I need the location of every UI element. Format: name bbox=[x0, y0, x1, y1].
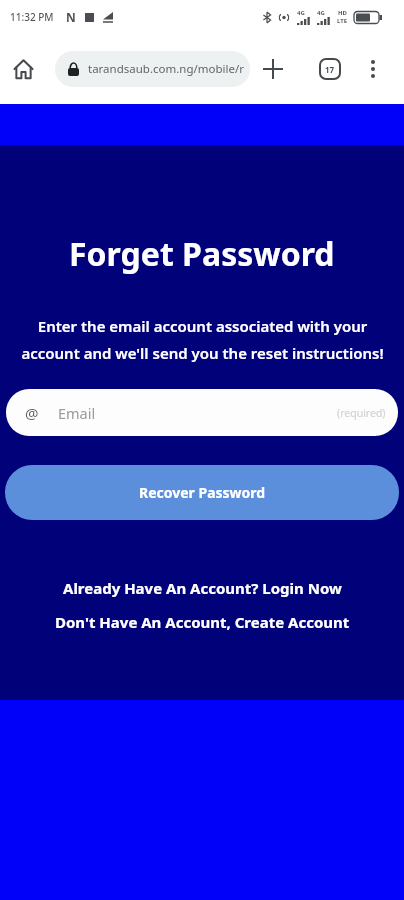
staticText: Recover Password bbox=[139, 483, 266, 502]
staticText: 4G bbox=[297, 9, 305, 17]
staticText: 4G bbox=[317, 9, 325, 17]
staticText: LTE bbox=[337, 17, 348, 25]
staticText: Enter the email account associated with … bbox=[21, 316, 384, 364]
staticText: (required) bbox=[337, 406, 386, 420]
staticText: 17 bbox=[325, 64, 335, 75]
button[interactable]: Don't Have An Account, Create Account bbox=[55, 612, 350, 632]
staticText: 11:32 PM bbox=[10, 10, 54, 24]
staticText: Forget Password bbox=[69, 232, 335, 276]
button[interactable]: Recover Password bbox=[5, 465, 399, 520]
button[interactable]: 17 bbox=[319, 58, 341, 80]
button[interactable]: @ bbox=[6, 389, 398, 436]
staticText: tarandsaub.com.ng/mobile/r bbox=[88, 61, 244, 77]
button[interactable] bbox=[13, 59, 34, 80]
button[interactable]: tarandsaub.com.ng/mobile/r bbox=[55, 51, 250, 87]
staticText: HD bbox=[338, 9, 347, 17]
staticText: Email bbox=[58, 403, 96, 423]
staticText: @ bbox=[25, 403, 39, 423]
button[interactable] bbox=[370, 60, 376, 78]
button[interactable] bbox=[263, 59, 283, 79]
button[interactable]: Already Have An Account? Login Now bbox=[63, 578, 342, 598]
staticText: N bbox=[66, 9, 76, 25]
